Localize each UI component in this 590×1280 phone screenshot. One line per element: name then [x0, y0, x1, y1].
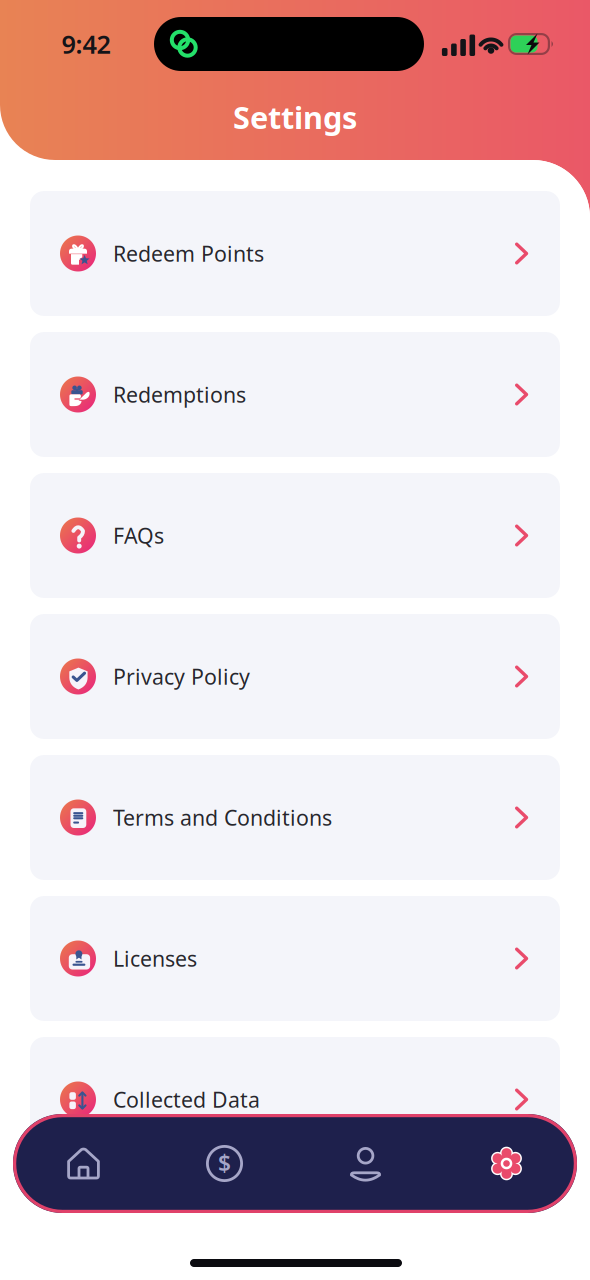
staticText: Settings: [233, 97, 357, 137]
button[interactable]: Redeem Points: [30, 191, 560, 316]
staticText: Redeem Points: [113, 239, 264, 268]
button[interactable]: Privacy Policy: [30, 614, 560, 739]
button[interactable]: Collected Data: [30, 1037, 560, 1162]
staticText: Terms and Conditions: [113, 803, 332, 832]
staticText: 9:42: [61, 27, 110, 61]
button[interactable]: Settings: [436, 1114, 577, 1212]
button[interactable]: Licenses: [30, 896, 560, 1021]
staticText: Licenses: [113, 944, 197, 973]
button[interactable]: Home: [13, 1114, 154, 1212]
staticText: Redemptions: [113, 380, 246, 409]
button[interactable]: Redemptions: [30, 332, 560, 457]
button[interactable]: Terms and Conditions: [30, 755, 560, 880]
button[interactable]: Earnings: [154, 1114, 295, 1212]
staticText: FAQs: [113, 521, 164, 550]
button[interactable]: FAQs: [30, 473, 560, 598]
staticText: Privacy Policy: [113, 662, 250, 691]
staticText: $: [218, 1148, 231, 1178]
button[interactable]: Profile: [295, 1114, 436, 1212]
staticText: Collected Data: [113, 1085, 260, 1114]
